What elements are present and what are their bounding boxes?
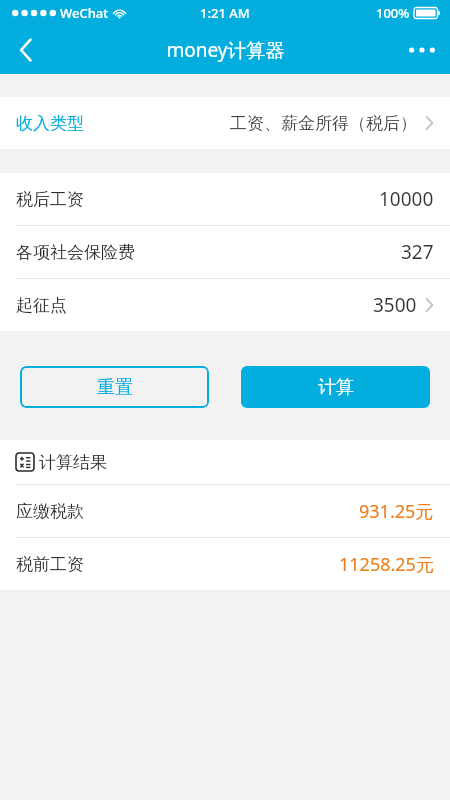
staticText: 计算结果 [39,452,107,473]
staticText: 各项社会保险费 [16,242,135,263]
button[interactable]: 收入类型 [0,97,450,149]
button[interactable]: Back [0,26,52,74]
button[interactable]: 重置 [20,366,209,408]
button[interactable]: More options [394,26,450,74]
staticText: 计算 [318,376,354,399]
button[interactable]: 起征点 [0,279,450,331]
staticText: 起征点 [16,295,67,316]
staticText: 10000 [379,186,434,212]
staticText: 931.25元 [359,499,434,524]
staticText: 重置 [97,376,133,399]
staticText: 3500 [373,292,417,318]
button[interactable]: 税前工资 [0,538,450,590]
staticText: 11258.25元 [339,552,434,577]
button[interactable]: 各项社会保险费 [0,226,450,279]
staticText: 税前工资 [16,554,84,575]
button[interactable]: 应缴税款 [0,485,450,538]
staticText: 收入类型 [16,113,84,134]
staticText: 327 [401,239,434,265]
staticText: WeChat [60,4,109,22]
staticText: 工资、薪金所得（税后） [230,113,417,134]
staticText: 税后工资 [16,189,84,210]
staticText: 应缴税款 [16,501,84,522]
staticText: 100% [376,4,410,22]
button[interactable]: 税后工资 [0,173,450,226]
button[interactable]: 计算 [241,366,430,408]
staticText: 1:21 AM [200,4,250,22]
staticText: money计算器 [166,37,285,63]
